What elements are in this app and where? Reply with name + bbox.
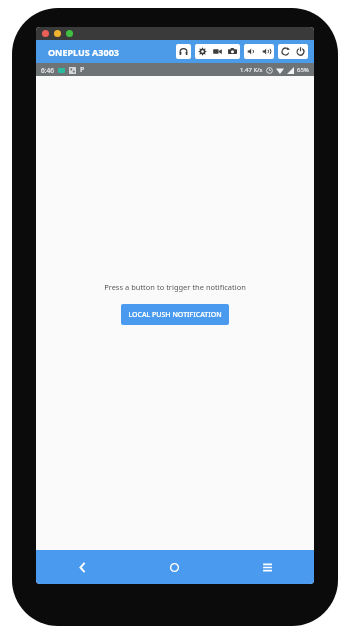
staticText: Press a button to trigger the notificati… — [104, 282, 246, 292]
button[interactable]: headphone — [176, 44, 191, 59]
staticText: LOCAL PUSH NOTIFICATION — [128, 310, 222, 320]
button[interactable]: camera — [225, 44, 240, 59]
button[interactable]: Recent apps — [221, 550, 314, 584]
button[interactable]: video — [210, 44, 225, 59]
button[interactable]: power — [293, 44, 308, 59]
staticText: P — [80, 65, 85, 75]
button[interactable]: Home — [128, 550, 221, 584]
button[interactable]: gear — [195, 44, 210, 59]
button[interactable]: Close window — [42, 30, 49, 37]
button[interactable]: Back — [36, 550, 128, 584]
button[interactable]: Minimize window — [54, 30, 61, 37]
button[interactable]: LOCAL PUSH NOTIFICATION — [121, 304, 229, 325]
button[interactable]: voldown — [244, 44, 259, 59]
staticText: ONEPLUS A3003 — [48, 46, 119, 58]
staticText: 65% — [297, 66, 309, 74]
button[interactable]: Maximize window — [66, 30, 73, 37]
button[interactable]: volup — [259, 44, 274, 59]
staticText: 6:46 — [41, 66, 54, 75]
button[interactable]: rotate — [278, 44, 293, 59]
staticText: 1.47 K/s — [240, 66, 263, 74]
